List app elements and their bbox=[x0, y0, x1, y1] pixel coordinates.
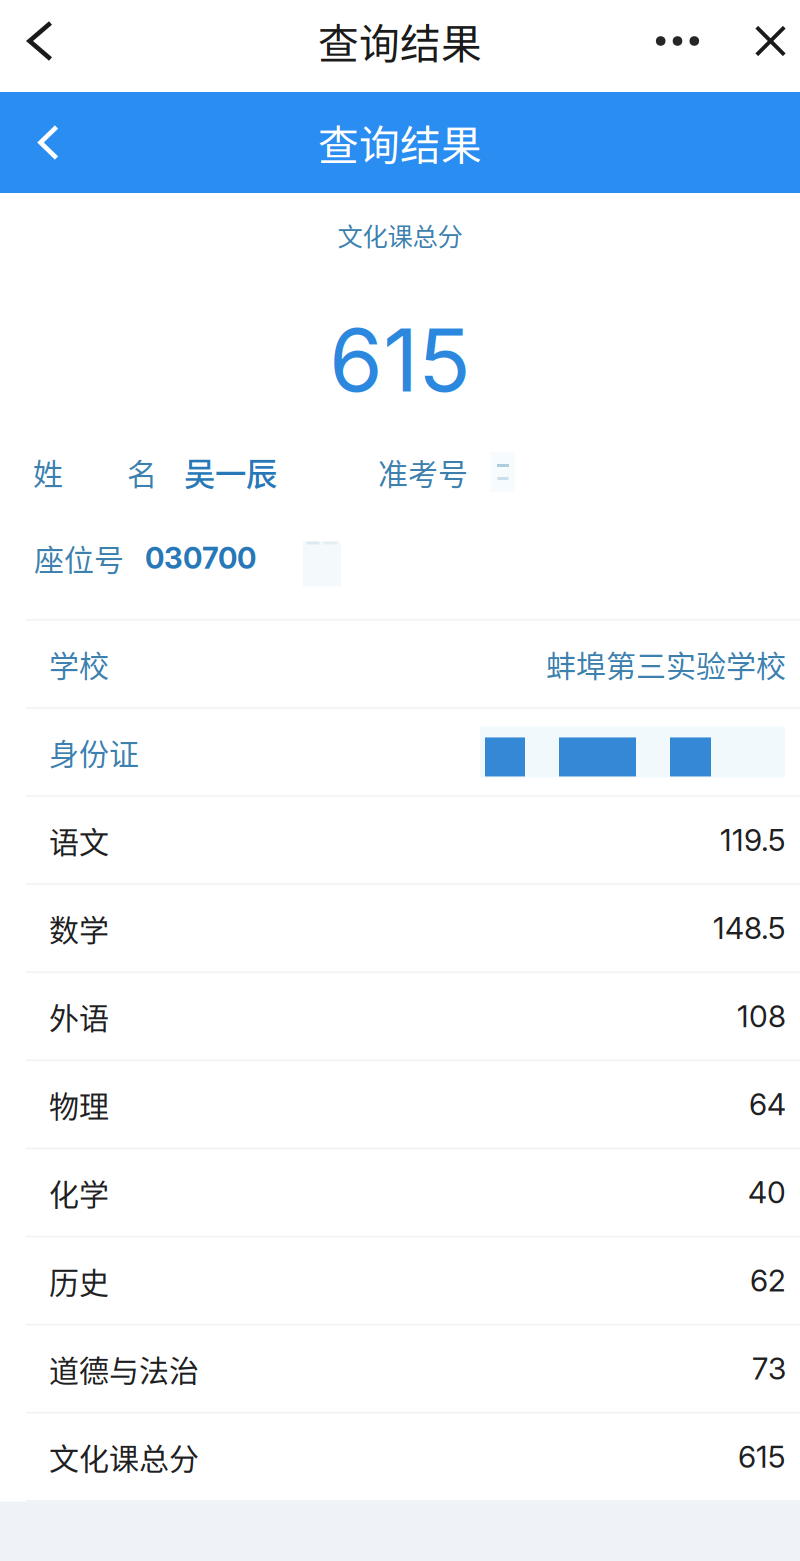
staticText: 语文 bbox=[49, 818, 109, 862]
button[interactable]: 文化课总分 bbox=[0, 1413, 800, 1502]
staticText: 吴一辰 bbox=[184, 449, 277, 495]
staticText: 道德与法治 bbox=[49, 1347, 199, 1390]
staticText: 座位号 bbox=[34, 536, 124, 580]
button[interactable]: 学校 bbox=[0, 621, 800, 709]
button[interactable]: 化学 bbox=[0, 1149, 800, 1237]
button[interactable]: 外语 bbox=[0, 973, 800, 1061]
staticText: 119.5 bbox=[720, 822, 786, 858]
button[interactable]: Back bbox=[0, 0, 80, 82]
button[interactable]: 历史 bbox=[0, 1237, 800, 1325]
button[interactable]: Close bbox=[741, 0, 800, 82]
staticText: 615 bbox=[738, 1439, 786, 1475]
button[interactable]: Back bbox=[0, 92, 97, 193]
staticText: 108 bbox=[737, 998, 786, 1034]
staticText: 姓 bbox=[33, 450, 63, 494]
staticText: 查询结果 bbox=[318, 12, 482, 70]
button[interactable]: 物理 bbox=[0, 1061, 800, 1149]
staticText: 73 bbox=[752, 1350, 786, 1387]
staticText: 化学 bbox=[49, 1171, 109, 1214]
button[interactable]: 语文 bbox=[0, 797, 800, 885]
staticText: 准考号 bbox=[378, 450, 468, 494]
staticText: 物理 bbox=[49, 1083, 109, 1126]
staticText: 学校 bbox=[49, 642, 109, 685]
staticText: 文化课总分 bbox=[49, 1435, 199, 1478]
button[interactable]: 数学 bbox=[0, 885, 800, 973]
staticText: 查询结果 bbox=[318, 113, 482, 172]
staticText: 64 bbox=[749, 1086, 786, 1122]
staticText: 身份证 bbox=[49, 730, 139, 774]
staticText: 名 bbox=[127, 450, 157, 494]
staticText: 40 bbox=[748, 1174, 786, 1211]
staticText: 历史 bbox=[49, 1259, 109, 1302]
staticText: 外语 bbox=[49, 994, 109, 1038]
staticText: 615 bbox=[329, 308, 471, 412]
staticText: 030700 bbox=[145, 540, 256, 576]
staticText: 148.5 bbox=[713, 910, 786, 946]
staticText: 62 bbox=[750, 1262, 786, 1299]
staticText: 蚌埠第三实验学校 bbox=[546, 642, 786, 685]
staticText: 数学 bbox=[49, 906, 109, 950]
staticText: 文化课总分 bbox=[337, 217, 462, 253]
button[interactable]: 道德与法治 bbox=[0, 1325, 800, 1413]
button[interactable]: 身份证 bbox=[0, 709, 800, 797]
button[interactable]: More bbox=[646, 0, 709, 82]
